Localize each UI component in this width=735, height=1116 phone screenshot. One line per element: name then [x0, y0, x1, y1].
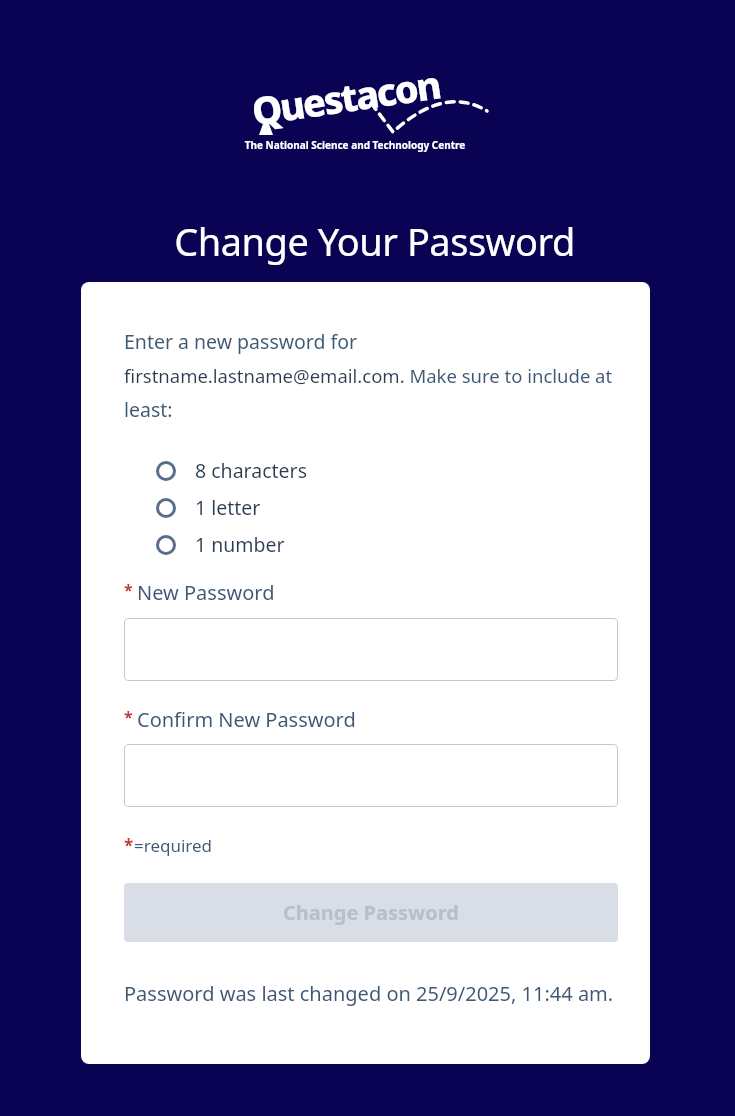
- staticText: New Password: [137, 579, 275, 606]
- staticText: 1 letter: [195, 494, 261, 521]
- staticText: least:: [124, 396, 173, 423]
- button[interactable]: Change Password: [124, 883, 618, 942]
- staticText: 8 characters: [195, 457, 307, 484]
- staticText: *: [124, 834, 134, 857]
- staticText: 1 number: [195, 531, 285, 558]
- staticText: Change Your Password: [17, 215, 732, 267]
- button[interactable]: [124, 618, 618, 681]
- button[interactable]: [124, 744, 618, 807]
- staticText: =required: [134, 834, 213, 857]
- staticText: The National Science and Technology Cent…: [0, 138, 710, 152]
- staticText: *: [124, 579, 137, 601]
- staticText: Questacon: [248, 57, 443, 137]
- staticText: Confirm New Password: [137, 706, 356, 733]
- staticText: firstname.lastname@email.com. Make sure …: [124, 363, 613, 388]
- staticText: Enter a new password for: [124, 328, 358, 355]
- staticText: *: [124, 706, 137, 728]
- staticText: Password was last changed on 25/9/2025, …: [124, 980, 614, 1007]
- staticText: Change Password: [283, 899, 459, 926]
